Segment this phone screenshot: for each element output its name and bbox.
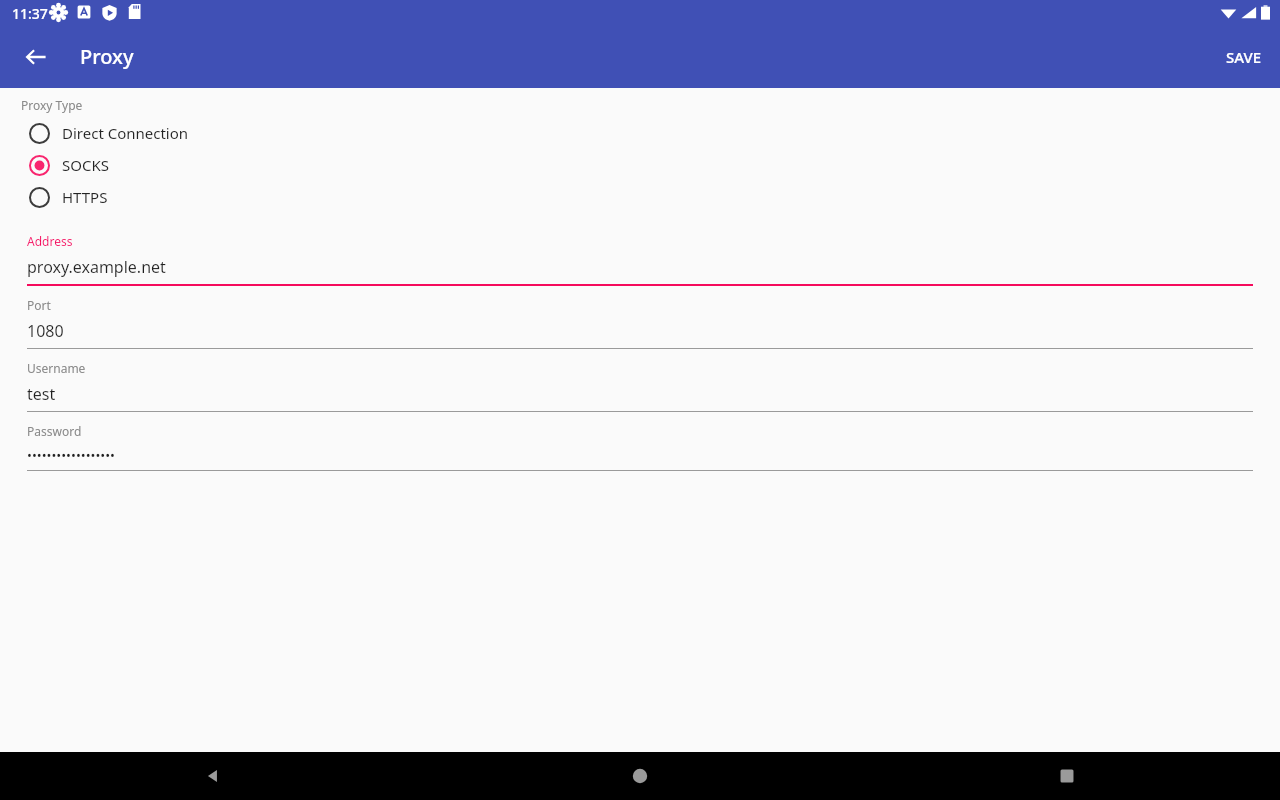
- button[interactable]: Password: [0, 412, 1280, 471]
- staticText: Direct Connection: [62, 123, 189, 143]
- staticText: Port: [27, 297, 51, 313]
- button[interactable]: Home: [426, 752, 853, 800]
- button[interactable]: Recent apps: [853, 752, 1280, 800]
- button[interactable]: SOCKS: [0, 149, 1280, 181]
- button[interactable]: Port: [0, 286, 1280, 349]
- button[interactable]: Address: [0, 222, 1280, 286]
- staticText: proxy.example.net: [27, 256, 166, 278]
- staticText: Proxy: [80, 43, 134, 70]
- staticText: SOCKS: [62, 155, 109, 175]
- button[interactable]: Username: [0, 349, 1280, 412]
- button[interactable]: SAVE: [1218, 39, 1270, 75]
- button[interactable]: HTTPS: [0, 181, 1280, 213]
- staticText: HTTPS: [62, 187, 108, 207]
- staticText: Proxy Type: [21, 97, 83, 113]
- staticText: Username: [27, 360, 86, 376]
- staticText: 11:37: [12, 4, 48, 23]
- staticText: ••••••••••••••••••: [27, 446, 115, 464]
- button[interactable]: Back: [12, 33, 60, 81]
- staticText: Address: [27, 233, 73, 249]
- button[interactable]: Back: [0, 752, 426, 800]
- staticText: 1080: [27, 320, 64, 342]
- staticText: test: [27, 383, 56, 405]
- staticText: Password: [27, 423, 82, 439]
- button[interactable]: Direct Connection: [0, 117, 1280, 149]
- staticText: SAVE: [1226, 47, 1262, 67]
